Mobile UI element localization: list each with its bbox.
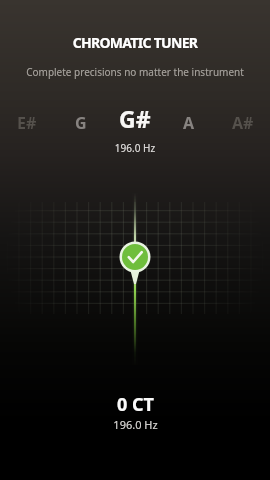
- staticText: A#: [232, 112, 254, 134]
- button[interactable]: A#: [216, 112, 270, 134]
- staticText: E#: [17, 112, 37, 134]
- staticText: 196.0 Hz: [113, 417, 158, 432]
- button[interactable]: G: [54, 112, 108, 134]
- button[interactable]: A: [162, 112, 216, 134]
- button[interactable]: G#: [108, 103, 162, 134]
- button[interactable]: E#: [0, 112, 54, 134]
- staticText: A: [183, 112, 195, 134]
- staticText: G#: [119, 103, 151, 134]
- staticText: G: [75, 112, 87, 134]
- staticText: 196.0 Hz: [0, 141, 270, 155]
- staticText: 0 CT: [117, 392, 154, 417]
- staticText: CHROMATIC TUNER: [0, 33, 270, 52]
- staticText: Complete precisions no matter the instru…: [0, 65, 270, 79]
